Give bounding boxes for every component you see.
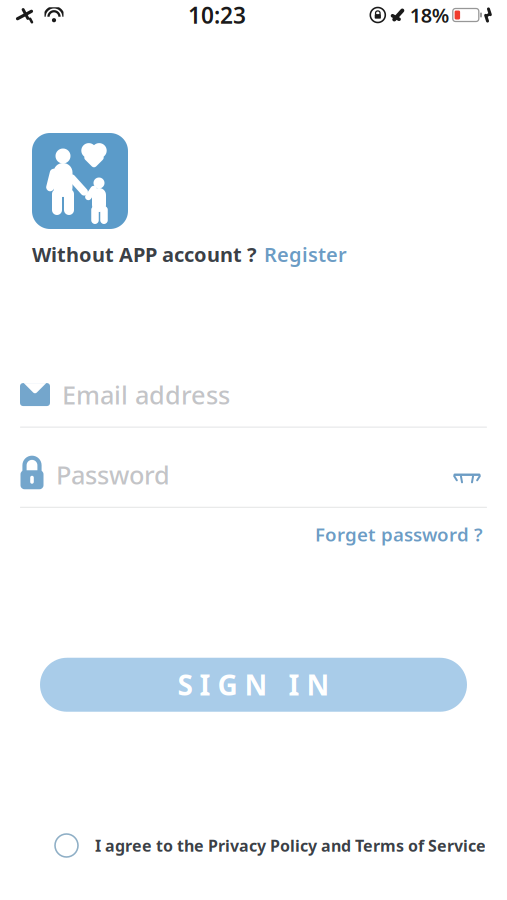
- staticText: Email address: [62, 378, 230, 411]
- staticText: Register: [264, 241, 347, 268]
- staticText: 10:23: [188, 0, 246, 30]
- button[interactable]: Forget password ?: [315, 522, 483, 547]
- button[interactable]: S I G N I N: [40, 658, 467, 712]
- staticText: Forget password ?: [315, 522, 483, 547]
- button[interactable]: Register: [264, 241, 347, 268]
- staticText: Password: [56, 458, 170, 491]
- button[interactable]: I agree to the Privacy Policy and Terms …: [0, 834, 507, 857]
- button[interactable]: Show password: [447, 458, 487, 492]
- staticText: Without APP account ?: [32, 241, 257, 268]
- staticText: 18%: [410, 2, 450, 28]
- staticText: I agree to the Privacy Policy and Terms …: [95, 835, 486, 856]
- staticText: S I G N I N: [177, 666, 329, 703]
